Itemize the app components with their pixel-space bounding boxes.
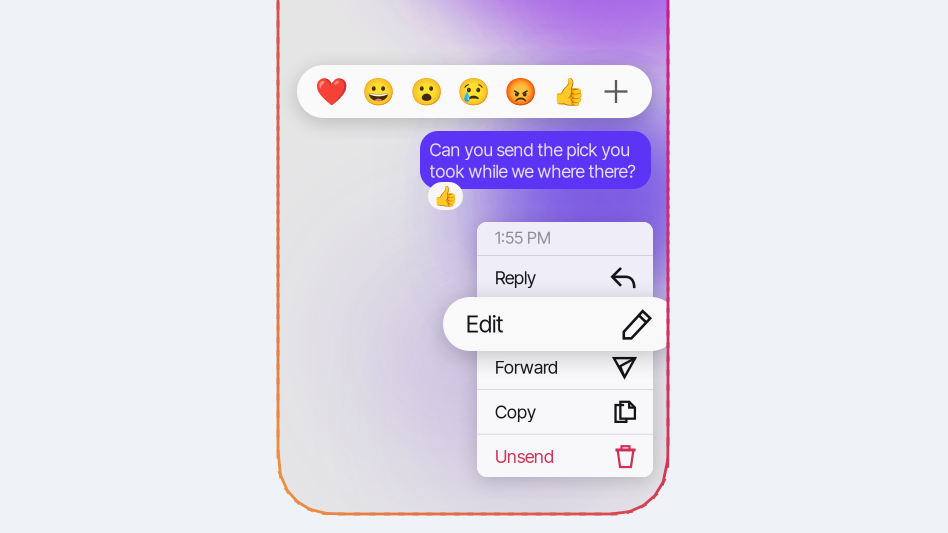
staticText: Forward — [495, 356, 558, 378]
button[interactable]: Copy — [477, 390, 653, 434]
button[interactable]: Edit — [477, 301, 653, 344]
button[interactable]: Angry — [498, 65, 542, 118]
staticText: Edit — [495, 312, 524, 333]
button[interactable]: Edit — [443, 297, 678, 351]
staticText: Reply — [495, 267, 536, 289]
staticText: Can you send the pick you took while we … — [429, 139, 635, 182]
staticText: 👍 — [551, 76, 584, 107]
staticText: 😮 — [409, 76, 442, 107]
button[interactable]: Reply — [477, 256, 653, 300]
button[interactable]: More reactions — [594, 65, 638, 118]
staticText: Copy — [495, 401, 536, 423]
staticText: Edit — [466, 310, 503, 338]
staticText: 😡 — [503, 76, 536, 107]
staticText: 😢 — [456, 76, 489, 107]
button[interactable]: Thumbs up — [546, 65, 590, 118]
staticText: ❤️ — [314, 76, 347, 107]
button[interactable]: Wow — [404, 65, 448, 118]
button[interactable]: Unsend — [477, 435, 653, 478]
staticText: 1:55 PM — [495, 228, 551, 248]
button[interactable]: Love — [309, 65, 353, 118]
staticText: 😀 — [361, 76, 394, 107]
button[interactable]: Sad — [451, 65, 495, 118]
staticText: Unsend — [495, 446, 554, 467]
button[interactable]: Forward — [477, 345, 653, 389]
staticText: 👍 — [433, 185, 458, 207]
button[interactable]: Like — [356, 65, 400, 118]
